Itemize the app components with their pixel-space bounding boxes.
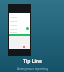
staticText: Anonymous reporting bbox=[17, 67, 48, 71]
button[interactable]: Add bbox=[26, 27, 29, 30]
staticText: Tip Line bbox=[23, 58, 42, 65]
